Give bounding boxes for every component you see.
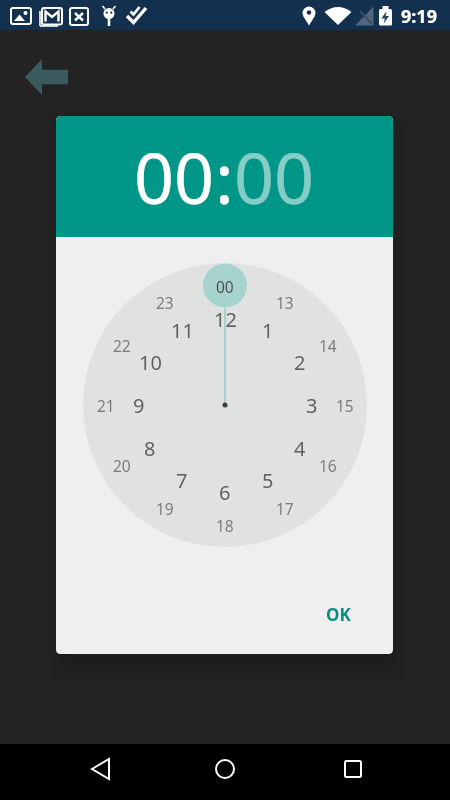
staticText: 00 xyxy=(234,129,315,224)
button[interactable] xyxy=(0,744,150,800)
staticText: 8 xyxy=(144,435,156,462)
staticText: 10 xyxy=(139,349,162,376)
staticText: 9 xyxy=(133,392,145,419)
staticText: 3 xyxy=(306,392,318,419)
staticText: 2 xyxy=(294,349,306,376)
staticText: 00 xyxy=(216,276,234,297)
staticText: 4 xyxy=(294,435,306,462)
staticText: 00 xyxy=(134,129,215,224)
staticText: OK xyxy=(326,603,351,626)
staticText: 7 xyxy=(176,467,188,494)
staticText: 21 xyxy=(97,395,115,416)
staticText: 9:19 xyxy=(401,4,437,29)
button[interactable]: 00 xyxy=(234,129,315,224)
staticText: 22 xyxy=(113,335,131,356)
staticText: 15 xyxy=(336,395,354,416)
button[interactable] xyxy=(300,744,450,800)
staticText: 17 xyxy=(276,498,294,519)
staticText: 18 xyxy=(216,515,234,536)
staticText: 1 xyxy=(262,317,274,344)
staticText: 20 xyxy=(113,455,131,476)
button[interactable] xyxy=(150,744,300,800)
staticText: 11 xyxy=(171,317,194,344)
staticText: 23 xyxy=(156,292,174,313)
staticText: : xyxy=(215,129,234,224)
staticText: 19 xyxy=(156,498,174,519)
staticText: 14 xyxy=(319,335,337,356)
button[interactable] xyxy=(16,50,78,104)
button[interactable]: 00 xyxy=(134,129,215,224)
staticText: 6 xyxy=(219,479,231,506)
staticText: 5 xyxy=(262,467,274,494)
staticText: 13 xyxy=(276,292,294,313)
button[interactable]: OK xyxy=(300,592,376,636)
staticText: 12 xyxy=(214,306,237,333)
staticText: 16 xyxy=(319,455,337,476)
